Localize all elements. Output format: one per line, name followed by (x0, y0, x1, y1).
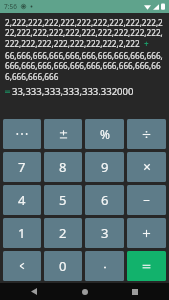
staticText: 2 (59, 224, 67, 242)
staticText: 0 (59, 257, 67, 275)
button[interactable]: Divide (127, 119, 166, 149)
button[interactable]: 8 (44, 152, 82, 182)
button[interactable]: 0 (44, 251, 82, 281)
staticText: 1 (18, 224, 26, 242)
button[interactable]: Equals (127, 251, 166, 281)
staticText: 66,666,666,666,666,666,666,666,666,666,6… (5, 50, 164, 83)
button[interactable]: 6 (85, 185, 124, 215)
button[interactable]: Recent apps (118, 283, 152, 300)
staticText: 7 (18, 158, 26, 176)
button[interactable]: 7 (3, 152, 41, 182)
staticText: 8 (59, 158, 67, 176)
button[interactable]: Backspace (3, 251, 41, 281)
button[interactable]: 3 (85, 218, 124, 248)
staticText: 6 (101, 191, 109, 209)
button[interactable]: 2 (44, 218, 82, 248)
staticText: % (100, 126, 110, 142)
staticText: 7:56 (4, 2, 17, 11)
button[interactable]: 9 (85, 152, 124, 182)
button[interactable]: Home (68, 283, 102, 300)
button[interactable]: 5 (44, 185, 82, 215)
button[interactable]: Plus minus (44, 119, 82, 149)
staticText: 33,333,333,333,333.332000 (12, 85, 134, 98)
staticText: 9 (101, 158, 109, 176)
button[interactable]: 4 (3, 185, 41, 215)
button[interactable]: More options (3, 119, 41, 149)
button[interactable]: 1 (3, 218, 41, 248)
button[interactable]: Percent (85, 119, 124, 149)
staticText: 3 (101, 224, 109, 242)
button[interactable]: Decimal point (85, 251, 124, 281)
button[interactable]: Plus (127, 218, 166, 248)
staticText: 4 (18, 191, 26, 209)
button[interactable]: Multiply (127, 152, 166, 182)
staticText: 5 (59, 191, 67, 209)
button[interactable]: Back (17, 283, 51, 300)
button[interactable]: Minus (127, 185, 166, 215)
staticText: 2,222,222,222,222,222,222,222,222,222,22… (5, 17, 164, 50)
